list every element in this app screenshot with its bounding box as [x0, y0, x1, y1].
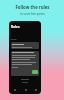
- staticText: to score free points: [20, 12, 45, 16]
- staticText: Rules: [11, 38, 17, 41]
- button[interactable]: Nav item: [21, 85, 30, 94]
- button[interactable]: [11, 42, 39, 49]
- staticText: Rules: [11, 25, 20, 29]
- staticText: Follow the rules: [15, 4, 50, 10]
- button[interactable]: Nav item: [10, 85, 19, 94]
- button[interactable]: Continue: [32, 70, 38, 74]
- button[interactable]: Nav item: [31, 85, 40, 94]
